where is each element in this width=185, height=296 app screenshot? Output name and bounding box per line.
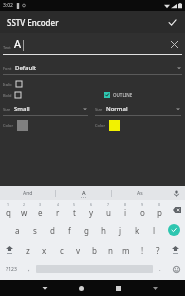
button[interactable]: x bbox=[36, 240, 53, 260]
button[interactable]: Color bbox=[95, 118, 185, 132]
staticText: l bbox=[153, 225, 156, 236]
staticText: c bbox=[60, 245, 64, 256]
button[interactable]: s bbox=[26, 220, 44, 240]
staticText: 3:02 bbox=[3, 2, 13, 9]
button[interactable]: b bbox=[86, 240, 102, 260]
staticText: Size bbox=[3, 107, 11, 112]
button[interactable]: g bbox=[78, 220, 95, 240]
button[interactable]: c bbox=[53, 240, 70, 260]
staticText: Color bbox=[3, 123, 14, 128]
staticText: SSTV Encoder bbox=[7, 17, 59, 28]
staticText: r bbox=[56, 207, 60, 218]
staticText: A bbox=[14, 36, 22, 51]
button[interactable]: Clear text bbox=[167, 37, 181, 51]
button[interactable]: Size bbox=[92, 103, 185, 115]
staticText: m bbox=[122, 245, 130, 256]
button[interactable]: And bbox=[0, 186, 55, 200]
staticText: f bbox=[68, 225, 71, 236]
button[interactable]: Shift right bbox=[166, 240, 185, 260]
button[interactable]: , bbox=[22, 260, 36, 278]
button[interactable]: OUTLINE bbox=[104, 92, 133, 98]
button[interactable]: j bbox=[112, 220, 129, 240]
staticText: 6 bbox=[90, 202, 93, 207]
button[interactable]: Emoji bbox=[167, 260, 185, 278]
staticText: Small bbox=[14, 105, 30, 113]
staticText: 7 bbox=[107, 202, 110, 207]
button[interactable]: 7 bbox=[100, 200, 117, 220]
button[interactable]: . bbox=[153, 260, 167, 278]
button[interactable]: 6 bbox=[83, 200, 100, 220]
staticText: s bbox=[33, 225, 37, 236]
button[interactable]: v bbox=[70, 240, 86, 260]
button[interactable]: Done bbox=[164, 14, 180, 30]
button[interactable]: a bbox=[8, 220, 26, 240]
staticText: OUTLINE bbox=[113, 92, 133, 98]
button[interactable]: m bbox=[118, 240, 134, 260]
button[interactable]: 4 bbox=[49, 200, 66, 220]
button[interactable]: 0 bbox=[151, 200, 168, 220]
staticText: 9 bbox=[141, 202, 144, 207]
staticText: A bbox=[82, 189, 86, 196]
button[interactable]: ! bbox=[134, 240, 150, 260]
button[interactable]: Recent apps bbox=[100, 280, 137, 296]
staticText: 0 bbox=[158, 202, 161, 207]
staticText: 1 bbox=[7, 202, 10, 207]
button[interactable]: h bbox=[95, 220, 112, 240]
staticText: Normal bbox=[106, 105, 128, 113]
button[interactable]: z bbox=[19, 240, 36, 260]
button[interactable]: A bbox=[56, 186, 111, 200]
staticText: u bbox=[106, 207, 111, 218]
staticText: d bbox=[50, 225, 55, 236]
button[interactable]: 2 bbox=[16, 200, 32, 220]
staticText: ?123 bbox=[6, 266, 17, 273]
staticText: 3 bbox=[39, 202, 42, 207]
staticText: t bbox=[73, 207, 76, 218]
staticText: k bbox=[135, 225, 140, 236]
button[interactable]: Voice input bbox=[167, 186, 185, 200]
button[interactable]: 3 bbox=[32, 200, 49, 220]
button[interactable]: As bbox=[112, 186, 167, 200]
staticText: As bbox=[137, 190, 143, 197]
button[interactable]: l bbox=[146, 220, 163, 240]
staticText: h bbox=[101, 225, 106, 236]
staticText: Color bbox=[95, 123, 106, 128]
staticText: w bbox=[21, 207, 28, 218]
staticText: x bbox=[42, 245, 47, 256]
button[interactable]: Shift bbox=[0, 240, 19, 260]
button[interactable]: Home bbox=[63, 280, 100, 296]
staticText: g bbox=[84, 225, 89, 236]
button[interactable]: 9 bbox=[134, 200, 151, 220]
staticText: Italic bbox=[3, 82, 13, 87]
button[interactable]: ? bbox=[150, 240, 166, 260]
button[interactable]: ?123 bbox=[0, 260, 22, 278]
staticText: 2 bbox=[23, 202, 26, 207]
staticText: Bold bbox=[3, 93, 12, 98]
button[interactable]: d bbox=[44, 220, 61, 240]
button[interactable]: Enter bbox=[163, 220, 185, 240]
staticText: n bbox=[108, 245, 113, 256]
button[interactable]: Font bbox=[0, 61, 185, 74]
staticText: i bbox=[124, 207, 127, 218]
button[interactable]: 5 bbox=[66, 200, 83, 220]
button[interactable]: Bold bbox=[3, 92, 21, 98]
staticText: Default bbox=[15, 64, 37, 72]
staticText: o bbox=[140, 207, 145, 218]
button[interactable]: f bbox=[61, 220, 78, 240]
button[interactable]: Italic bbox=[3, 81, 22, 87]
button[interactable]: Hide keyboard bbox=[137, 280, 174, 296]
button[interactable]: 8 bbox=[117, 200, 134, 220]
button[interactable]: k bbox=[129, 220, 146, 240]
button[interactable]: Backspace bbox=[168, 200, 185, 220]
button[interactable]: Color bbox=[3, 118, 92, 132]
staticText: 8 bbox=[124, 202, 127, 207]
button[interactable]: Size bbox=[0, 103, 92, 115]
staticText: Text bbox=[3, 45, 11, 50]
button[interactable]: Back bbox=[26, 280, 63, 296]
button[interactable]: 1 bbox=[0, 200, 16, 220]
staticText: , bbox=[28, 265, 30, 273]
staticText: v bbox=[76, 245, 81, 256]
staticText: y bbox=[89, 207, 94, 218]
button[interactable]: n bbox=[102, 240, 118, 260]
staticText: Size bbox=[95, 107, 103, 112]
